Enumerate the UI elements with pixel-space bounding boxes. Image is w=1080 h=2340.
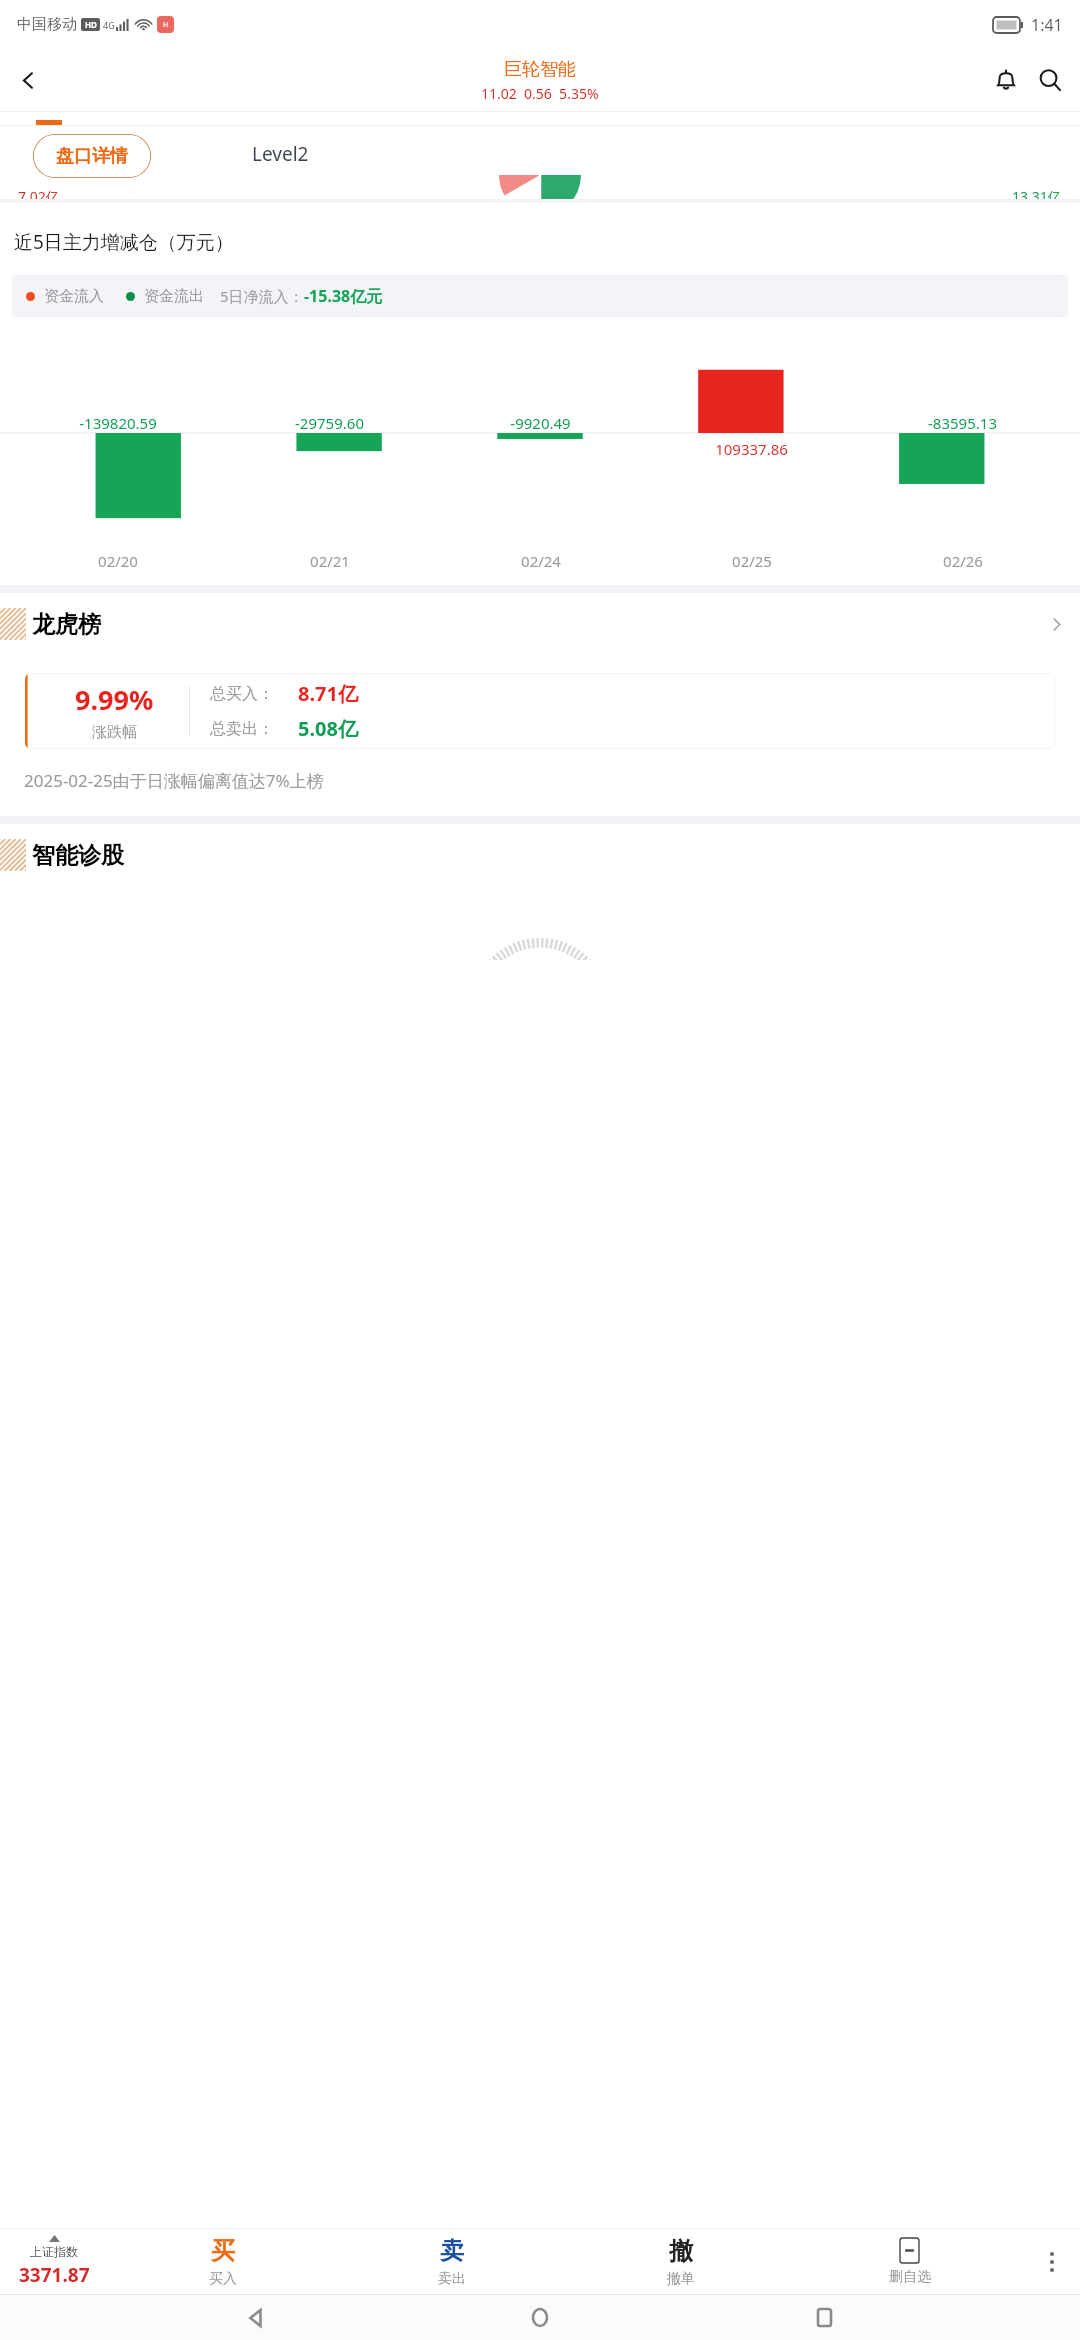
staticText: 龙虎榜 [32, 610, 101, 639]
staticText: 卖 [440, 2236, 464, 2266]
staticText: 02/21 [310, 551, 350, 571]
staticText: 卖出 [438, 2270, 466, 2288]
staticText: 02/20 [98, 551, 138, 571]
staticText: 删自选 [889, 2268, 931, 2286]
staticText: -9920.49 [510, 413, 571, 433]
staticText: 上证指数 [30, 2244, 78, 2259]
staticText: 涨跌幅 [92, 723, 137, 742]
button[interactable]: Search [1028, 58, 1072, 102]
staticText: 盘口详情 [56, 145, 128, 168]
staticText: 撤 [669, 2236, 693, 2266]
staticText: 总卖出： [210, 719, 274, 739]
staticText: 02/26 [943, 551, 983, 571]
button[interactable]: 撤 [566, 2229, 795, 2294]
staticText: 1:41 [1031, 14, 1063, 36]
staticText: Level2 [252, 141, 309, 167]
button[interactable]: 买 [108, 2229, 337, 2294]
staticText: 4G [103, 19, 115, 31]
staticText: H [163, 20, 169, 30]
staticText: 02/25 [732, 551, 772, 571]
button[interactable]: 9.99% [25, 673, 1055, 749]
button[interactable]: Recents [796, 2295, 852, 2340]
staticText: 13.31亿 [1012, 187, 1062, 206]
staticText: 9.99% [75, 681, 154, 718]
button[interactable]: 上证指数 [0, 2229, 108, 2294]
staticText: 近5日主力增减仓（万元） [14, 229, 234, 255]
staticText: 5.08亿 [298, 715, 358, 742]
staticText: 中国移动 [17, 15, 77, 34]
staticText: 买入 [209, 2270, 237, 2288]
button[interactable]: 盘口详情 [33, 134, 151, 178]
staticText: 02/24 [521, 551, 561, 571]
button[interactable]: Home [512, 2295, 568, 2340]
staticText: 8.71亿 [298, 680, 358, 707]
staticText: HD [85, 19, 97, 30]
staticText: 资金流出 [144, 287, 204, 306]
staticText: 买 [211, 2236, 235, 2266]
button[interactable]: More options [1024, 2229, 1080, 2294]
staticText: 3371.87 [19, 2262, 90, 2288]
button[interactable]: 删自选 [795, 2229, 1024, 2294]
staticText: 2025-02-25由于日涨幅偏离值达7%上榜 [24, 769, 324, 792]
staticText: -15.38亿元 [304, 285, 383, 307]
button[interactable]: Notifications [984, 58, 1028, 102]
button[interactable]: Back [228, 2295, 284, 2340]
staticText: 5日净流入： [220, 286, 304, 306]
staticText: -29759.60 [295, 413, 364, 433]
button[interactable]: Back [6, 58, 50, 102]
staticText: 巨轮智能 [504, 58, 576, 81]
button[interactable]: More [1032, 600, 1080, 648]
staticText: 资金流入 [44, 287, 104, 306]
staticText: 109337.86 [715, 439, 788, 459]
staticText: -83595.13 [928, 413, 997, 433]
staticText: 总买入： [210, 684, 274, 704]
staticText: 撤单 [667, 2270, 695, 2288]
staticText: 智能诊股 [32, 841, 124, 870]
staticText: 7.02亿 [18, 187, 60, 206]
staticText: -139820.59 [79, 413, 157, 433]
staticText: 11.02 0.56 5.35% [481, 84, 599, 103]
button[interactable]: 卖 [337, 2229, 566, 2294]
